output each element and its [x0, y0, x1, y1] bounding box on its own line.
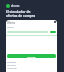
- staticText: ofertas de compra: [6, 14, 36, 18]
- staticText: actual: [7, 25, 14, 28]
- staticText: mensual: [7, 66, 17, 69]
- staticText: del plan: [7, 63, 16, 66]
- button[interactable]: Logo: [6, 4, 20, 8]
- staticText: ahorro: [11, 4, 20, 8]
- staticText: Simular: [27, 55, 36, 58]
- button[interactable]: Simular: [7, 54, 56, 58]
- staticText: El simulador de: [6, 10, 31, 14]
- staticText: Oferta: [7, 21, 15, 25]
- button[interactable]: Confirmar: [50, 31, 56, 33]
- staticText: Detalles: [7, 60, 17, 63]
